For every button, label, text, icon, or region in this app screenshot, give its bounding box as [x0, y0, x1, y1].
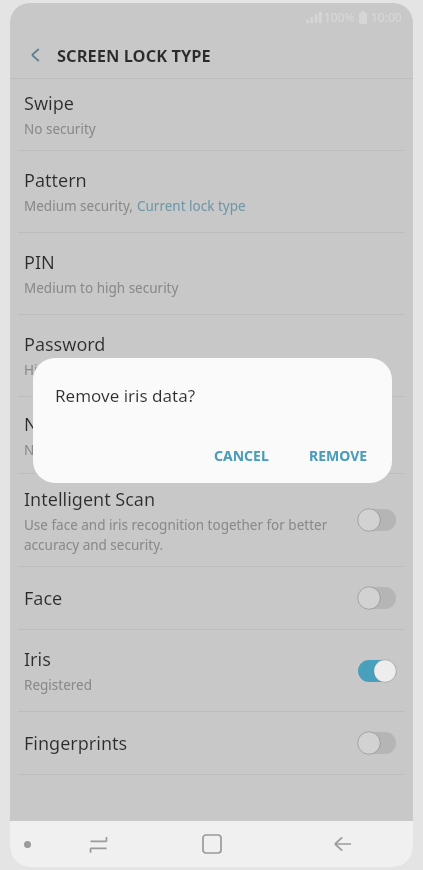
button[interactable]: REMOVE [295, 436, 382, 475]
staticText: Current lock type [137, 197, 246, 215]
staticText: REMOVE [309, 446, 368, 465]
button[interactable]: Iris switch [351, 651, 403, 691]
button[interactable]: Face switch [351, 578, 403, 618]
button[interactable]: Password [10, 315, 413, 396]
staticText: accuracy and security. [24, 536, 164, 554]
staticText: 100% [324, 9, 355, 25]
staticText: Face [24, 586, 63, 611]
staticText: Intelligent Scan [24, 487, 156, 512]
staticText: Fingerprints [24, 731, 128, 756]
staticText: PIN [24, 250, 55, 275]
staticText: SCREEN LOCK TYPE [57, 44, 211, 66]
button[interactable]: Navigate up [18, 37, 54, 73]
staticText: Medium to high security [24, 279, 179, 297]
button[interactable]: Intelligent Scan switch [351, 500, 403, 540]
staticText: Medium security, [24, 197, 137, 215]
button[interactable]: Face [10, 567, 413, 629]
button[interactable]: Pattern [10, 151, 413, 232]
button[interactable]: Swipe [10, 79, 413, 150]
staticText: No security [24, 441, 96, 459]
button[interactable]: Fingerprints [10, 712, 413, 774]
button[interactable]: Recent apps [76, 822, 120, 866]
staticText: Password [24, 332, 106, 357]
staticText: CANCEL [214, 446, 269, 465]
staticText: Registered [24, 676, 92, 694]
button[interactable]: CANCEL [200, 436, 283, 475]
staticText: High security [24, 361, 108, 379]
staticText: Swipe [24, 91, 74, 116]
staticText: None [24, 412, 70, 437]
button[interactable]: Back [321, 822, 365, 866]
button[interactable]: Fingerprints switch [351, 723, 403, 763]
staticText: Remove iris data? [55, 384, 196, 407]
button[interactable]: Intelligent Scan [10, 474, 413, 566]
staticText: No security [24, 120, 96, 138]
button[interactable]: None [10, 397, 413, 473]
staticText: Use face and iris recognition together f… [24, 516, 328, 534]
staticText: Iris [24, 647, 51, 672]
button[interactable]: PIN [10, 233, 413, 314]
staticText: 10:00 [371, 9, 402, 25]
staticText: Pattern [24, 168, 87, 193]
button[interactable]: Iris [10, 630, 413, 711]
button[interactable]: Home [190, 822, 234, 866]
